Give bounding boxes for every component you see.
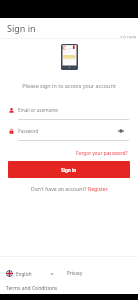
staticText: Sign in: [61, 167, 77, 173]
staticText: Email or username: [18, 107, 58, 113]
button[interactable]: Terms and Conditions: [0, 283, 138, 294]
staticText: Sign in: [7, 22, 36, 34]
button[interactable]: Sign in: [8, 161, 130, 178]
staticText: Register: [88, 186, 108, 193]
staticText: 1.0 (169): [120, 35, 136, 40]
staticText: Don't have an account?: [31, 186, 88, 193]
button[interactable]: Don't have an account?: [0, 186, 138, 193]
button[interactable]: Forgot your password?: [74, 148, 130, 159]
staticText: Password: [18, 128, 39, 134]
button[interactable]: English: [0, 270, 54, 277]
staticText: Please sign in to access your account: [0, 82, 138, 89]
other: Show password: [118, 128, 124, 134]
staticText: English: [16, 271, 32, 277]
staticText: Terms and Conditions: [6, 285, 58, 292]
button[interactable]: Privacy: [67, 270, 83, 276]
